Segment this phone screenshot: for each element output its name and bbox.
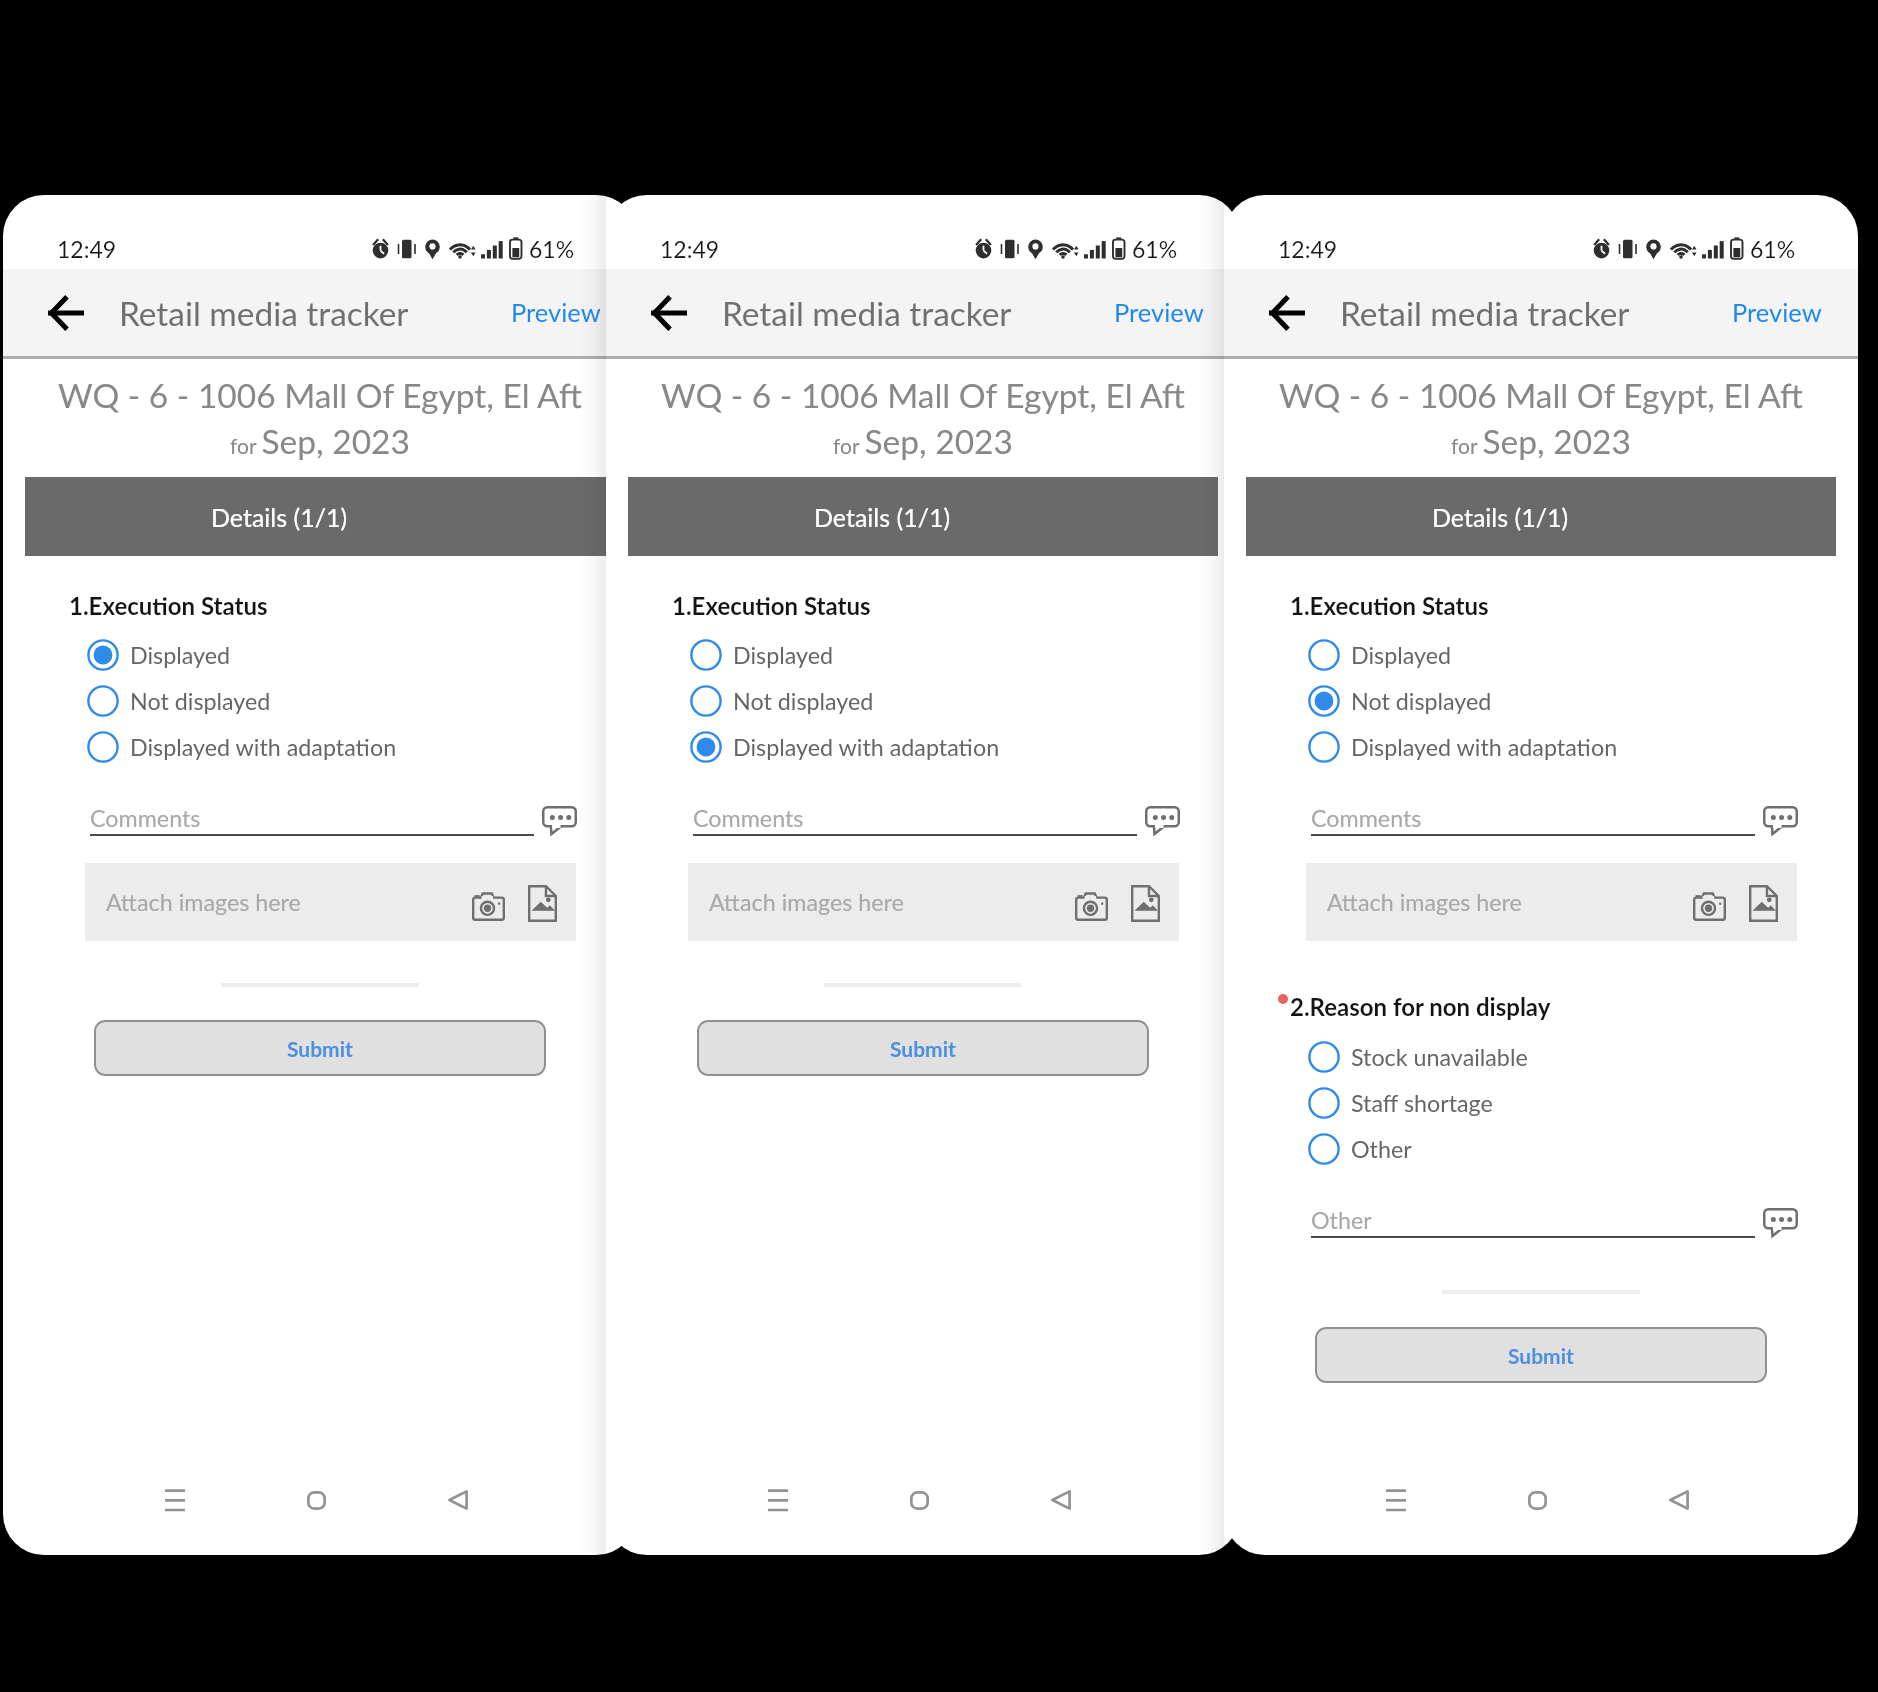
button[interactable]: Displayed xyxy=(3,632,637,678)
staticText: Not displayed xyxy=(130,687,271,715)
staticText: Displayed with adaptation xyxy=(130,733,397,761)
button[interactable]: Preview xyxy=(511,297,601,328)
button[interactable]: Displayed xyxy=(606,632,1240,678)
staticText: for Sep, 2023 xyxy=(1451,421,1631,461)
button[interactable]: Take photo xyxy=(1693,893,1726,921)
staticText: Comments xyxy=(1311,804,1422,832)
staticText: Retail media tracker xyxy=(722,293,1012,333)
button[interactable]: Back xyxy=(436,1478,480,1522)
staticText: WQ - 6 - 1006 Mall Of Egypt, El Aft xyxy=(58,375,582,415)
staticText: Submit xyxy=(287,1036,353,1061)
button[interactable]: Back xyxy=(645,289,693,337)
staticText: Retail media tracker xyxy=(1340,293,1630,333)
staticText: 1.Execution Status xyxy=(1290,591,1489,620)
button[interactable]: Add comment xyxy=(542,806,577,835)
staticText: Other xyxy=(1311,1206,1372,1234)
button[interactable]: Staff shortage xyxy=(1224,1080,1858,1126)
staticText: Stock unavailable xyxy=(1351,1043,1528,1071)
button[interactable]: Choose image xyxy=(528,885,557,922)
staticText: Attach images here xyxy=(1327,888,1522,916)
staticText: Retail media tracker xyxy=(119,293,409,333)
staticText: Submit xyxy=(1508,1343,1574,1368)
button[interactable]: Recent apps xyxy=(1374,1478,1418,1522)
button[interactable]: Submit xyxy=(94,1020,546,1076)
button[interactable]: Submit xyxy=(1315,1327,1767,1383)
button[interactable]: Back xyxy=(1039,1478,1083,1522)
button[interactable]: Home xyxy=(897,1478,941,1522)
staticText: Submit xyxy=(890,1036,956,1061)
button[interactable]: Preview xyxy=(1114,297,1204,328)
button[interactable]: Not displayed xyxy=(606,678,1240,724)
button[interactable]: Choose image xyxy=(1749,885,1778,922)
staticText: Details (1/1) xyxy=(1432,502,1569,532)
staticText: Not displayed xyxy=(1351,687,1492,715)
button[interactable]: Not displayed xyxy=(3,678,637,724)
button[interactable]: Other xyxy=(1224,1126,1858,1172)
staticText: Preview xyxy=(1732,297,1822,328)
staticText: 1.Execution Status xyxy=(672,591,871,620)
button[interactable]: Submit xyxy=(697,1020,1149,1076)
button[interactable]: Home xyxy=(1515,1478,1559,1522)
staticText: Staff shortage xyxy=(1351,1089,1493,1117)
staticText: 2.Reason for non display xyxy=(1290,992,1551,1021)
button[interactable]: Back xyxy=(42,289,90,337)
staticText: Details (1/1) xyxy=(814,502,951,532)
staticText: 61% xyxy=(529,235,575,263)
staticText: Displayed with adaptation xyxy=(733,733,1000,761)
staticText: WQ - 6 - 1006 Mall Of Egypt, El Aft xyxy=(1279,375,1803,415)
button[interactable]: Recent apps xyxy=(756,1478,800,1522)
staticText: Preview xyxy=(1114,297,1204,328)
button[interactable]: Take photo xyxy=(1075,893,1108,921)
button[interactable]: Add comment xyxy=(1145,806,1180,835)
button[interactable]: Choose image xyxy=(1131,885,1160,922)
button[interactable]: Back xyxy=(1657,1478,1701,1522)
button[interactable]: Stock unavailable xyxy=(1224,1034,1858,1080)
button[interactable]: Add comment xyxy=(1763,1208,1798,1237)
staticText: Displayed xyxy=(733,641,834,669)
button[interactable]: Not displayed xyxy=(1224,678,1858,724)
button[interactable]: Take photo xyxy=(472,893,505,921)
button[interactable]: Home xyxy=(294,1478,338,1522)
staticText: Displayed xyxy=(130,641,231,669)
button[interactable]: Displayed with adaptation xyxy=(3,724,637,770)
staticText: 61% xyxy=(1750,235,1796,263)
button[interactable]: Displayed xyxy=(1224,632,1858,678)
button[interactable]: Displayed with adaptation xyxy=(1224,724,1858,770)
staticText: 12:49 xyxy=(57,235,117,263)
staticText: 1.Execution Status xyxy=(69,591,268,620)
staticText: Comments xyxy=(693,804,804,832)
button[interactable]: Details (1/1) xyxy=(1246,477,1836,556)
staticText: Attach images here xyxy=(709,888,904,916)
staticText: for Sep, 2023 xyxy=(833,421,1013,461)
button[interactable]: Attach images here xyxy=(85,863,576,941)
button[interactable]: Details (1/1) xyxy=(628,477,1218,556)
staticText: 12:49 xyxy=(660,235,720,263)
staticText: Displayed xyxy=(1351,641,1452,669)
staticText: Other xyxy=(1351,1135,1412,1163)
staticText: Attach images here xyxy=(106,888,301,916)
staticText: 12:49 xyxy=(1278,235,1338,263)
staticText: Comments xyxy=(90,804,201,832)
staticText: Preview xyxy=(511,297,601,328)
staticText: Details (1/1) xyxy=(211,502,348,532)
staticText: WQ - 6 - 1006 Mall Of Egypt, El Aft xyxy=(661,375,1185,415)
button[interactable]: Preview xyxy=(1732,297,1822,328)
staticText: Not displayed xyxy=(733,687,874,715)
staticText: 61% xyxy=(1132,235,1178,263)
staticText: for Sep, 2023 xyxy=(230,421,410,461)
button[interactable]: Back xyxy=(1263,289,1311,337)
button[interactable]: Recent apps xyxy=(153,1478,197,1522)
staticText: Displayed with adaptation xyxy=(1351,733,1618,761)
button[interactable]: Details (1/1) xyxy=(25,477,615,556)
button[interactable]: Add comment xyxy=(1763,806,1798,835)
button[interactable]: Attach images here xyxy=(1306,863,1797,941)
button[interactable]: Attach images here xyxy=(688,863,1179,941)
button[interactable]: Displayed with adaptation xyxy=(606,724,1240,770)
